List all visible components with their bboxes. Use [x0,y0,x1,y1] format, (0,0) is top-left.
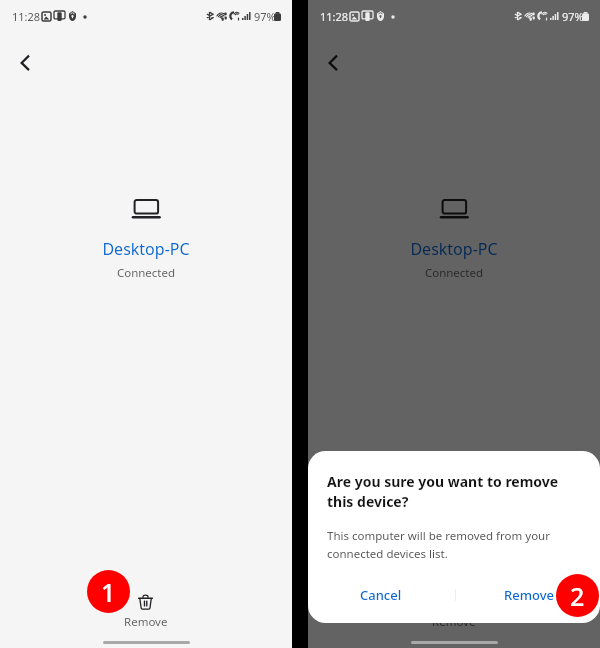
staticText: Are you sure you want to remove this dev… [327,472,559,511]
staticText: This computer will be removed from your … [327,528,550,562]
staticText: Cancel [360,586,402,604]
staticText: Desktop-PC [0,238,292,260]
staticText: 97% [562,9,584,24]
staticText: Connected [0,265,292,281]
staticText: 97% [254,9,276,24]
staticText: Remove [504,586,554,604]
staticText: 1 [101,575,116,609]
staticText: Connected [308,265,600,281]
button[interactable]: Remove [0,594,292,630]
staticText: Remove [124,614,168,630]
button[interactable]: Back [313,46,353,86]
button[interactable]: Back [5,46,45,86]
staticText: 2 [570,579,585,613]
button[interactable]: Remove [467,573,590,617]
staticText: Remove [432,614,476,630]
button[interactable]: Remove [308,594,600,630]
staticText: 11:28 [12,9,41,24]
button[interactable]: Cancel [319,573,442,617]
staticText: 11:28 [320,9,349,24]
staticText: Desktop-PC [308,238,600,260]
